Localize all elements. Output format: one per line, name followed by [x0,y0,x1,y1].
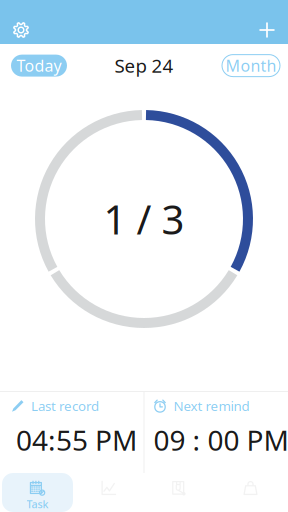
staticText: Last record [31,397,99,415]
staticText: Sep 24 [114,53,173,78]
button[interactable]: Today [11,55,67,77]
button[interactable]: Task [2,473,73,512]
staticText: Task [26,497,48,511]
staticText: 09 : 00 PM [153,421,288,458]
staticText: Month [225,55,276,76]
staticText: Today [16,55,61,76]
staticText: Next remind [173,397,249,415]
button[interactable]: Add [245,6,288,44]
staticText: 1 / 3 [103,192,184,245]
button[interactable]: Month [222,55,280,77]
staticText: 04:55 PM [16,421,137,458]
button[interactable]: Settings [0,6,42,44]
